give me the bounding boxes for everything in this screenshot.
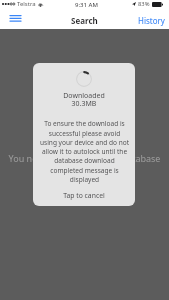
staticText: You need to download the database bbox=[0, 152, 169, 164]
staticText: database download bbox=[34, 156, 135, 165]
staticText: completed message is bbox=[34, 166, 135, 175]
button[interactable]: History bbox=[133, 12, 169, 29]
button[interactable]: Tap to cancel bbox=[55, 189, 113, 202]
staticText: allow it to autolock until the bbox=[34, 147, 135, 156]
staticText: 83% bbox=[138, 0, 150, 8]
staticText: displayed bbox=[34, 175, 135, 184]
staticText: using your device and do not bbox=[34, 138, 135, 147]
staticText: History bbox=[138, 15, 165, 26]
staticText: Telstra bbox=[17, 0, 36, 8]
staticText: Tap to cancel bbox=[63, 191, 105, 200]
staticText: Search bbox=[71, 15, 98, 26]
staticText: 9:31 AM bbox=[75, 1, 98, 9]
staticText: To ensure the download is bbox=[34, 119, 135, 128]
staticText: Downloaded 30.3MB bbox=[33, 91, 135, 108]
button[interactable]: Menu bbox=[4, 12, 27, 25]
staticText: successful please avoid bbox=[34, 129, 135, 138]
